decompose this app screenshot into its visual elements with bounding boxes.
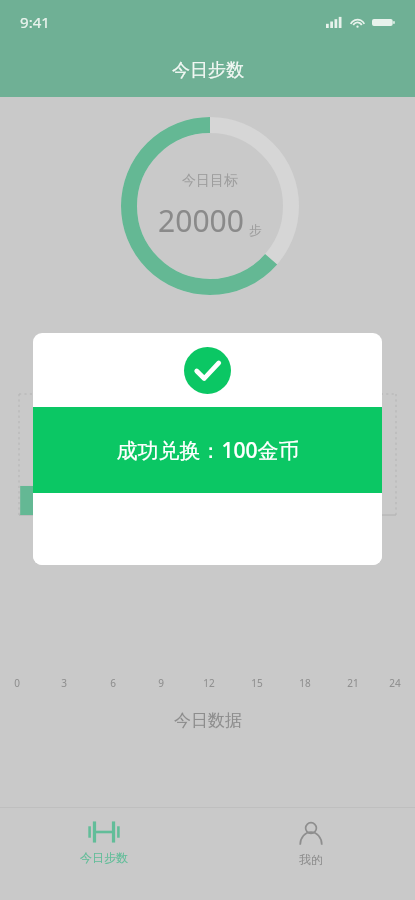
button[interactable]: 我的 bbox=[207, 808, 415, 900]
staticText: 今日步数 bbox=[80, 850, 128, 865]
staticText: 9 bbox=[158, 676, 164, 690]
staticText: 6 bbox=[110, 676, 116, 690]
staticText: 24 bbox=[389, 676, 401, 690]
other: 我的 bbox=[296, 821, 326, 845]
staticText: 0 bbox=[14, 676, 20, 690]
staticText: 9:41 bbox=[20, 12, 50, 32]
staticText: 今日步数 bbox=[172, 59, 244, 82]
staticText: 今日数据 bbox=[174, 710, 242, 731]
staticText: 成功兑换：100金币 bbox=[116, 436, 300, 465]
button[interactable]: 今日步数 bbox=[0, 808, 207, 900]
staticText: 15 bbox=[251, 676, 263, 690]
button[interactable]: 成功兑换：100金币 bbox=[33, 333, 382, 565]
staticText: 12 bbox=[203, 676, 215, 690]
staticText: 今日目标 bbox=[182, 172, 238, 190]
staticText: 我的 bbox=[299, 852, 323, 867]
staticText: 3 bbox=[61, 676, 67, 690]
other: 今日步数 bbox=[87, 821, 121, 843]
staticText: 步 bbox=[249, 222, 262, 238]
staticText: 18 bbox=[299, 676, 311, 690]
staticText: 21 bbox=[347, 676, 359, 690]
staticText: 20000 bbox=[158, 200, 244, 241]
